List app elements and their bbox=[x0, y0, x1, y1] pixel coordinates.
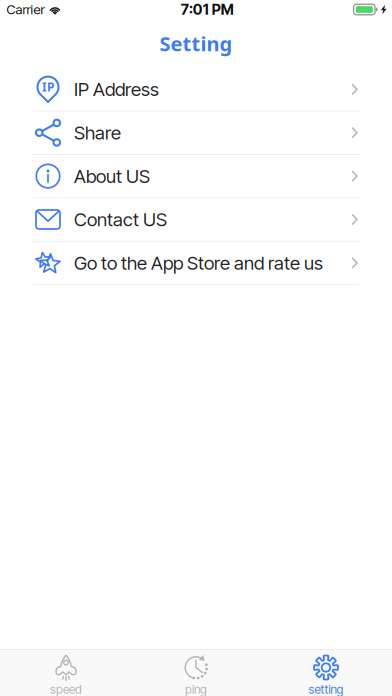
staticText: Contact US bbox=[74, 208, 167, 231]
staticText: 7:01 bbox=[181, 1, 209, 18]
button[interactable]: speed bbox=[1, 650, 131, 696]
staticText: IP Address bbox=[74, 78, 159, 101]
staticText: Setting bbox=[159, 30, 232, 57]
button[interactable]: About US bbox=[0, 155, 392, 198]
button[interactable]: Go to the App Store and rate us bbox=[0, 242, 392, 285]
staticText: ping bbox=[185, 682, 207, 696]
staticText: PM bbox=[212, 1, 234, 18]
staticText: Share bbox=[74, 121, 121, 144]
staticText: setting bbox=[308, 682, 343, 696]
staticText: IP bbox=[42, 79, 54, 95]
staticText: Carrier bbox=[6, 1, 44, 17]
button[interactable]: Contact US bbox=[0, 198, 392, 242]
staticText: About US bbox=[74, 165, 150, 187]
staticText: speed bbox=[50, 682, 82, 696]
button[interactable]: IP bbox=[0, 68, 392, 111]
button[interactable]: ping bbox=[131, 650, 261, 696]
staticText: Go to the App Store and rate us bbox=[74, 252, 323, 274]
button[interactable]: setting bbox=[261, 650, 391, 696]
button[interactable]: Share bbox=[0, 111, 392, 155]
